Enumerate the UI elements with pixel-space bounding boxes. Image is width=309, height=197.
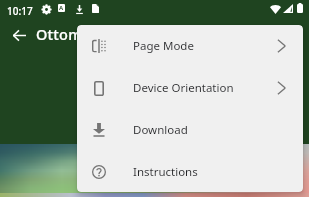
button[interactable]: Back — [2, 18, 36, 52]
staticText: Instructions — [133, 164, 198, 180]
staticText: Ottoman — [36, 24, 100, 44]
staticText: A — [59, 4, 64, 12]
button[interactable]: Device Orientation — [77, 67, 303, 109]
staticText: Download — [133, 122, 188, 138]
staticText: Page Mode — [133, 38, 194, 54]
staticText: Device Orientation — [133, 80, 234, 96]
button[interactable]: Page Mode — [77, 25, 303, 67]
button[interactable]: Instructions — [77, 151, 303, 192]
staticText: 10:17 — [7, 4, 33, 18]
button[interactable]: Download — [77, 109, 303, 151]
